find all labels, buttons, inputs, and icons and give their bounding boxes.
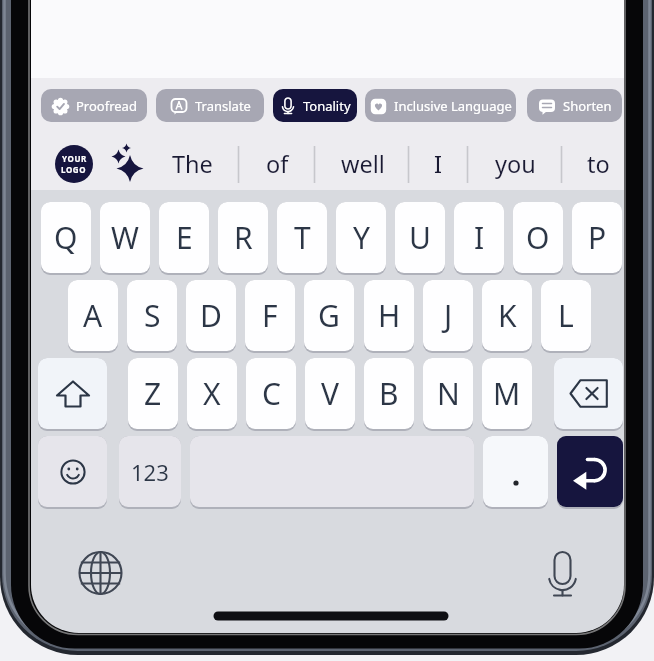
staticText: T <box>294 217 311 258</box>
button[interactable]: S <box>127 280 177 353</box>
button[interactable]: Translate <box>156 89 264 122</box>
staticText: C <box>262 373 281 414</box>
staticText: V <box>321 373 339 414</box>
staticText: 123 <box>131 457 169 487</box>
button[interactable]: Y <box>336 202 386 275</box>
button[interactable]: M <box>482 358 532 431</box>
button[interactable]: Inclusive Language <box>365 89 516 122</box>
button[interactable]: N <box>423 358 473 431</box>
button[interactable]: Q <box>41 202 91 275</box>
staticText: H <box>378 295 401 336</box>
staticText: Tonality <box>303 97 351 115</box>
button[interactable] <box>190 436 474 509</box>
button[interactable]: Shorten <box>527 89 622 122</box>
staticText: W <box>111 217 139 258</box>
staticText: X <box>203 373 221 414</box>
button[interactable]: U <box>395 202 445 275</box>
staticText: U <box>409 217 431 258</box>
button[interactable]: G <box>304 280 354 353</box>
staticText: Inclusive Language <box>394 97 512 115</box>
button[interactable]: C <box>246 358 296 431</box>
staticText: YOUR <box>62 153 87 164</box>
button[interactable]: Tonality <box>273 89 357 122</box>
staticText: K <box>498 295 517 336</box>
staticText: N <box>437 373 460 414</box>
staticText: Translate <box>195 97 251 115</box>
staticText: S <box>144 295 161 336</box>
staticText: to <box>587 148 610 180</box>
button[interactable]: X <box>187 358 237 431</box>
staticText: Proofread <box>76 97 137 115</box>
button[interactable]: B <box>364 358 414 431</box>
button[interactable]: P <box>572 202 622 275</box>
button[interactable]: to <box>556 137 624 191</box>
staticText: R <box>234 217 253 258</box>
button[interactable]: O <box>513 202 563 275</box>
button[interactable] <box>557 436 623 509</box>
button[interactable]: K <box>482 280 532 353</box>
button[interactable]: D <box>186 280 236 353</box>
button[interactable] <box>483 436 548 509</box>
button[interactable]: R <box>218 202 268 275</box>
staticText: D <box>200 295 222 336</box>
staticText: you <box>495 148 536 180</box>
staticText: A <box>83 295 103 336</box>
staticText: M <box>493 373 521 414</box>
button[interactable]: H <box>364 280 414 353</box>
staticText: G <box>318 295 340 336</box>
staticText: Q <box>54 217 78 258</box>
button[interactable]: of <box>235 137 319 191</box>
staticText: J <box>444 295 453 336</box>
button[interactable] <box>38 436 107 509</box>
staticText: E <box>176 217 193 258</box>
button[interactable]: well <box>321 137 405 191</box>
staticText: Shorten <box>563 97 612 115</box>
button[interactable]: W <box>100 202 150 275</box>
staticText: B <box>379 373 399 414</box>
button[interactable]: Proofread <box>41 89 147 122</box>
button[interactable]: V <box>305 358 355 431</box>
button[interactable]: L <box>541 280 591 353</box>
staticText: LOGO <box>61 164 87 175</box>
staticText: F <box>262 295 278 336</box>
button[interactable]: you <box>473 137 557 191</box>
button[interactable] <box>554 358 623 431</box>
staticText: I <box>434 148 442 180</box>
button[interactable]: A <box>68 280 118 353</box>
button[interactable]: I <box>454 202 504 275</box>
staticText: Y <box>353 217 370 258</box>
button[interactable]: YOUR <box>55 145 93 183</box>
staticText: Z <box>144 373 162 414</box>
staticText: O <box>526 217 550 258</box>
button[interactable]: J <box>423 280 473 353</box>
button[interactable]: T <box>277 202 327 275</box>
button[interactable]: The <box>150 137 234 191</box>
staticText: well <box>341 148 385 180</box>
button[interactable]: E <box>159 202 209 275</box>
staticText: P <box>588 217 607 258</box>
staticText: The <box>172 148 213 180</box>
button[interactable]: Z <box>128 358 178 431</box>
button[interactable]: F <box>245 280 295 353</box>
button[interactable]: 123 <box>119 436 181 509</box>
button[interactable] <box>38 358 107 431</box>
staticText: L <box>558 295 574 336</box>
staticText: I <box>474 217 485 258</box>
staticText: of <box>266 148 289 180</box>
button[interactable]: I <box>396 137 480 191</box>
